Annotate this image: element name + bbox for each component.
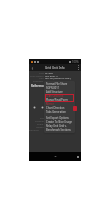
- staticText: Scan Grid Unit: [46, 94, 64, 98]
- staticText: Create To Slice Usage: [46, 120, 72, 124]
- button[interactable]: Publisher: [29, 79, 81, 82]
- button[interactable]: Benchmark Sections: [44, 128, 75, 132]
- staticText: Share: [37, 122, 44, 125]
- button[interactable]: Title: [29, 71, 81, 74]
- staticText: Duration Type: [29, 128, 44, 131]
- staticText: Planar/Final/Form: [46, 98, 68, 102]
- button[interactable]: Scan Grid Unit: [44, 94, 75, 98]
- button[interactable]: Tabs Generation: [44, 110, 75, 114]
- button[interactable]: Grid System: [29, 74, 81, 77]
- staticText: Benchmark Sections: [46, 128, 71, 132]
- staticText: Mirror: [46, 102, 54, 106]
- staticText: Title: [39, 71, 44, 74]
- staticText: Relay Unit Grid v. Range: [46, 124, 75, 128]
- button[interactable]: Chart Direction: [44, 106, 75, 110]
- button[interactable]: Navigate up: [29, 65, 35, 71]
- staticText: Reference: [31, 84, 46, 87]
- button[interactable]: Add Structure: [44, 90, 75, 94]
- staticText: Unit: [39, 76, 44, 79]
- button[interactable]: SGPR-0011: [44, 86, 75, 90]
- staticText: Format File Share: [46, 82, 68, 86]
- staticText: ISO 8601-A: [45, 74, 58, 77]
- staticText: Set Export Options: [46, 116, 69, 120]
- staticText: File: [40, 116, 44, 119]
- button[interactable]: Create To Slice Usage: [44, 120, 75, 124]
- staticText: Grid System: [30, 74, 44, 77]
- button[interactable]: More options: [76, 64, 81, 71]
- staticText: 100%: [72, 60, 79, 64]
- button[interactable]: Set Export Options: [44, 116, 75, 120]
- staticText: SI1295: [45, 71, 53, 74]
- staticText: MU-28 (SG00012 Exp.): [45, 76, 71, 79]
- button[interactable]: Relay Unit Grid v. Range: [44, 124, 75, 128]
- button[interactable]: Add: [73, 106, 77, 111]
- staticText: SGPR-0011: [46, 86, 60, 90]
- button[interactable]: Mirror: [44, 102, 75, 106]
- staticText: Grid Unit Info: [45, 66, 65, 70]
- staticText: Content: [35, 119, 44, 122]
- button[interactable]: Back: [53, 154, 58, 159]
- button[interactable]: Reference: [31, 84, 46, 87]
- staticText: Chart Direction: [46, 106, 65, 110]
- staticText: Publisher: [33, 79, 44, 82]
- button[interactable]: Unit: [29, 76, 81, 79]
- staticText: Tabs Generation: [46, 110, 66, 114]
- button[interactable]: Planar/Final/Form: [44, 98, 75, 102]
- staticText: Add Structure: [46, 90, 63, 94]
- staticText: Length: [36, 125, 44, 128]
- button[interactable]: Format File Share: [44, 82, 75, 86]
